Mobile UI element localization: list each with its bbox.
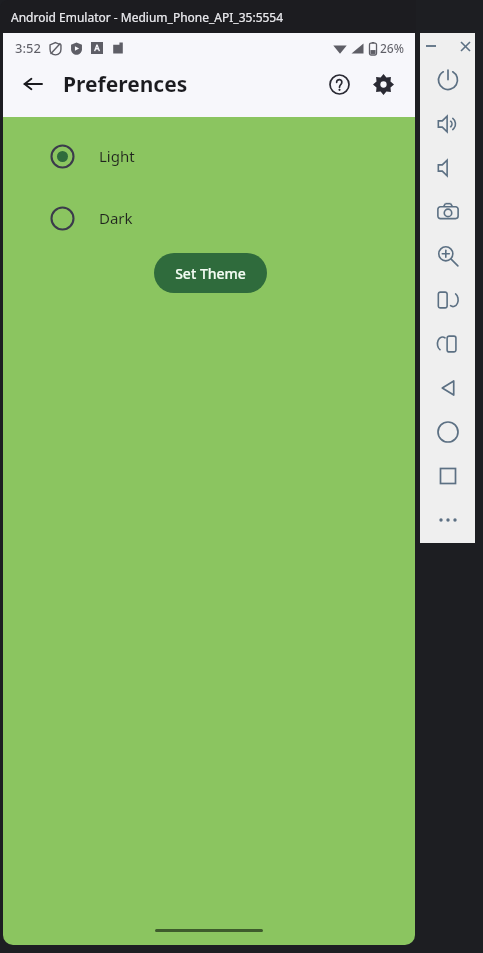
staticText: Dark (99, 208, 133, 228)
button[interactable]: Light (3, 139, 415, 173)
button[interactable]: Screenshot (420, 190, 475, 234)
staticText: 26% (380, 40, 404, 56)
staticText: Android Emulator - Medium_Phone_API_35:5… (11, 9, 284, 25)
button[interactable]: Set Theme (154, 253, 267, 293)
button[interactable]: Dark (3, 201, 415, 235)
staticText: Preferences (63, 70, 188, 99)
button[interactable]: Help (317, 62, 361, 106)
staticText: Light (99, 146, 135, 166)
button[interactable]: Power (420, 58, 475, 102)
button[interactable]: Volume down (420, 146, 475, 190)
button[interactable]: Zoom (420, 234, 475, 278)
staticText: 3:52 (15, 39, 41, 57)
button[interactable]: Home (420, 410, 475, 454)
button[interactable]: Volume up (420, 102, 475, 146)
button[interactable]: More (420, 498, 475, 542)
staticText: Set Theme (175, 264, 246, 283)
button[interactable]: Back (420, 366, 475, 410)
button[interactable]: Overview (420, 454, 475, 498)
button[interactable]: Back (11, 62, 55, 106)
button[interactable]: Close (455, 36, 475, 56)
button[interactable]: Rotate left (420, 278, 475, 322)
button[interactable]: Rotate right (420, 322, 475, 366)
button[interactable]: Minimize (421, 36, 441, 56)
button[interactable]: Settings (361, 62, 405, 106)
